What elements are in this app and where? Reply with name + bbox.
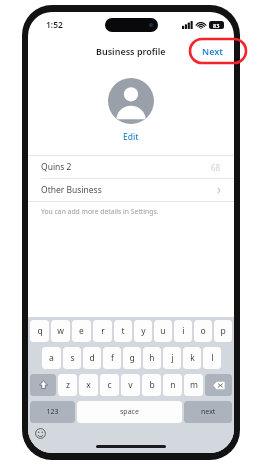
staticText: 68: [211, 162, 221, 173]
button[interactable]: o: [194, 320, 212, 342]
button[interactable]: s: [63, 347, 81, 369]
staticText: x: [86, 379, 91, 391]
button[interactable]: m: [184, 374, 203, 396]
staticText: n: [170, 379, 176, 391]
button[interactable]: q: [30, 320, 49, 342]
staticText: Quins 2: [41, 161, 72, 173]
staticText: 83: [213, 22, 220, 29]
button[interactable]: i: [174, 320, 192, 342]
button[interactable]: h: [143, 347, 161, 369]
button[interactable]: r: [93, 320, 112, 342]
button[interactable]: Emoji: [35, 428, 46, 439]
button[interactable]: g: [123, 347, 141, 369]
button[interactable]: next: [184, 401, 232, 423]
staticText: k: [190, 352, 195, 364]
button[interactable]: Backspace: [205, 374, 232, 396]
button[interactable]: w: [51, 320, 70, 342]
button[interactable]: f: [103, 347, 121, 369]
staticText: space: [120, 407, 139, 417]
staticText: s: [70, 352, 75, 364]
button[interactable]: Quins 2: [28, 156, 234, 178]
staticText: c: [107, 379, 112, 391]
staticText: 123: [46, 407, 59, 417]
button[interactable]: 123: [30, 401, 75, 423]
staticText: w: [57, 325, 64, 337]
staticText: y: [141, 325, 146, 337]
staticText: r: [101, 325, 105, 337]
staticText: d: [89, 352, 95, 364]
staticText: h: [149, 352, 155, 364]
button[interactable]: c: [100, 374, 119, 396]
button[interactable]: k: [183, 347, 201, 369]
staticText: z: [66, 379, 70, 391]
staticText: u: [160, 325, 166, 337]
button[interactable]: l: [203, 347, 221, 369]
staticText: 1:52: [46, 19, 63, 31]
staticText: Business profile: [96, 45, 166, 57]
staticText: Next: [202, 45, 223, 57]
staticText: a: [49, 352, 54, 364]
button[interactable]: Edit: [113, 129, 149, 145]
button[interactable]: Shift: [30, 374, 56, 396]
button[interactable]: space: [77, 401, 182, 423]
button[interactable]: p: [214, 320, 232, 342]
staticText: next: [201, 407, 216, 417]
button[interactable]: n: [163, 374, 182, 396]
button[interactable]: Next: [191, 40, 234, 62]
button[interactable]: Other Business: [28, 179, 234, 201]
button[interactable]: e: [72, 320, 91, 342]
button[interactable]: j: [163, 347, 181, 369]
staticText: f: [111, 352, 114, 364]
staticText: i: [182, 325, 185, 337]
staticText: You can add more details in Settings.: [41, 207, 159, 216]
staticText: Edit: [123, 131, 139, 143]
button[interactable]: v: [121, 374, 140, 396]
staticText: g: [129, 352, 135, 364]
button[interactable]: z: [58, 374, 77, 396]
staticText: l: [211, 352, 214, 364]
staticText: m: [190, 379, 198, 391]
button[interactable]: x: [79, 374, 98, 396]
button[interactable]: d: [83, 347, 101, 369]
staticText: Other Business: [41, 184, 102, 196]
button[interactable]: b: [142, 374, 161, 396]
button[interactable]: u: [154, 320, 172, 342]
staticText: j: [171, 352, 174, 364]
button[interactable]: y: [134, 320, 152, 342]
staticText: q: [37, 325, 43, 337]
staticText: v: [128, 379, 133, 391]
staticText: o: [200, 325, 206, 337]
button[interactable]: t: [114, 320, 132, 342]
staticText: t: [121, 325, 125, 337]
button[interactable]: a: [42, 347, 61, 369]
staticText: b: [149, 379, 155, 391]
button[interactable]: Profile photo: [108, 78, 154, 124]
staticText: p: [220, 325, 226, 337]
staticText: e: [79, 325, 84, 337]
